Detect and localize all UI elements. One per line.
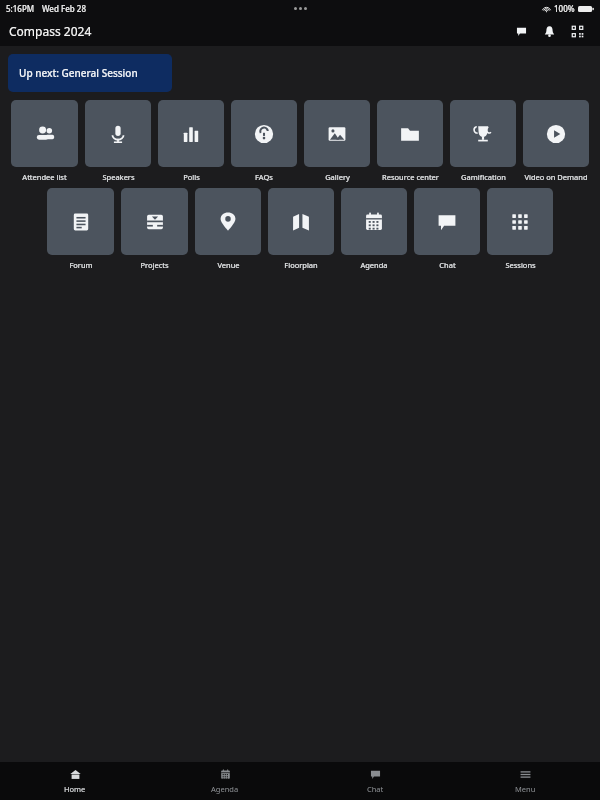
button[interactable]: Projects xyxy=(118,188,191,270)
staticText: Gamification xyxy=(461,172,506,182)
button[interactable]: Attendee list xyxy=(8,100,81,182)
staticText: Floorplan xyxy=(284,260,318,270)
button[interactable]: Sessions xyxy=(484,188,556,270)
staticText: FAQs xyxy=(255,172,273,182)
button[interactable]: Venue xyxy=(192,188,264,270)
staticText: Home xyxy=(64,784,86,794)
staticText: Forum xyxy=(69,260,93,270)
button[interactable]: Gallery xyxy=(301,100,373,182)
button[interactable]: Forum xyxy=(44,188,117,270)
button[interactable]: Home xyxy=(0,762,150,800)
staticText: Projects xyxy=(140,260,169,270)
button[interactable]: Chat xyxy=(411,188,483,270)
staticText: Venue xyxy=(217,260,240,270)
button[interactable]: Video on Demand xyxy=(520,100,592,182)
staticText: Chat xyxy=(367,784,384,794)
button[interactable]: Messages xyxy=(508,18,534,44)
staticText: Attendee list xyxy=(22,172,67,182)
staticText: Video on Demand xyxy=(524,172,588,182)
button[interactable]: Resource center xyxy=(374,100,446,182)
staticText: Polls xyxy=(183,172,200,182)
staticText: Resource center xyxy=(382,172,439,182)
staticText: Gallery xyxy=(325,172,350,182)
button[interactable]: Chat xyxy=(300,762,450,800)
button[interactable]: Up next: General Session xyxy=(8,54,172,92)
staticText: Chat xyxy=(439,260,456,270)
staticText: Sessions xyxy=(505,260,536,270)
staticText: 100% xyxy=(554,3,575,14)
button[interactable]: Polls xyxy=(155,100,227,182)
staticText: Agenda xyxy=(360,260,388,270)
button[interactable]: Agenda xyxy=(150,762,300,800)
button[interactable]: Notifications xyxy=(536,18,562,44)
staticText: Up next: General Session xyxy=(19,66,138,80)
button[interactable]: Speakers xyxy=(82,100,154,182)
staticText: Agenda xyxy=(211,784,239,794)
button[interactable]: Floorplan xyxy=(265,188,337,270)
staticText: Speakers xyxy=(102,172,135,182)
staticText: Wed Feb 28 xyxy=(42,3,87,14)
button[interactable]: Menu xyxy=(450,762,600,800)
staticText: 5:16PM xyxy=(6,3,35,14)
button[interactable]: Agenda xyxy=(338,188,410,270)
staticText: Compass 2024 xyxy=(9,23,92,39)
button[interactable]: FAQs xyxy=(228,100,300,182)
staticText: Menu xyxy=(515,784,536,794)
button[interactable]: Scan QR code xyxy=(564,18,590,44)
button[interactable]: Gamification xyxy=(447,100,519,182)
